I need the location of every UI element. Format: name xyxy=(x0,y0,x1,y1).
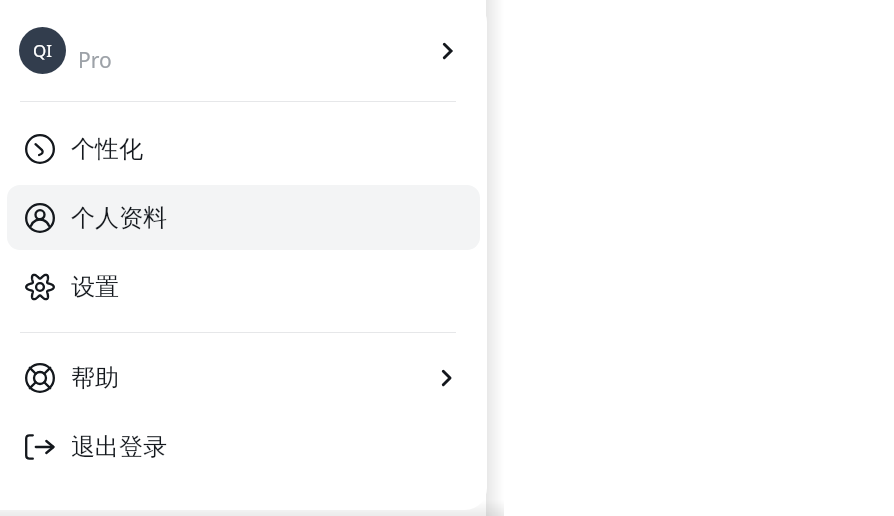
button[interactable]: QI xyxy=(0,0,487,101)
button[interactable]: 退出登录 xyxy=(7,414,480,479)
staticText: QI xyxy=(33,39,53,62)
staticText: 个人资料 xyxy=(71,203,167,233)
staticText: 帮助 xyxy=(71,363,119,393)
staticText: 个性化 xyxy=(71,134,143,164)
button[interactable]: 设置 xyxy=(7,254,480,319)
staticText: Pro xyxy=(78,46,112,75)
staticText: 退出登录 xyxy=(71,432,167,462)
button[interactable]: 个性化 xyxy=(7,116,480,181)
staticText: 设置 xyxy=(71,272,119,302)
button[interactable]: 个人资料 xyxy=(7,185,480,250)
button[interactable]: 帮助 xyxy=(7,345,480,410)
other: 打开帮助 xyxy=(434,365,460,391)
